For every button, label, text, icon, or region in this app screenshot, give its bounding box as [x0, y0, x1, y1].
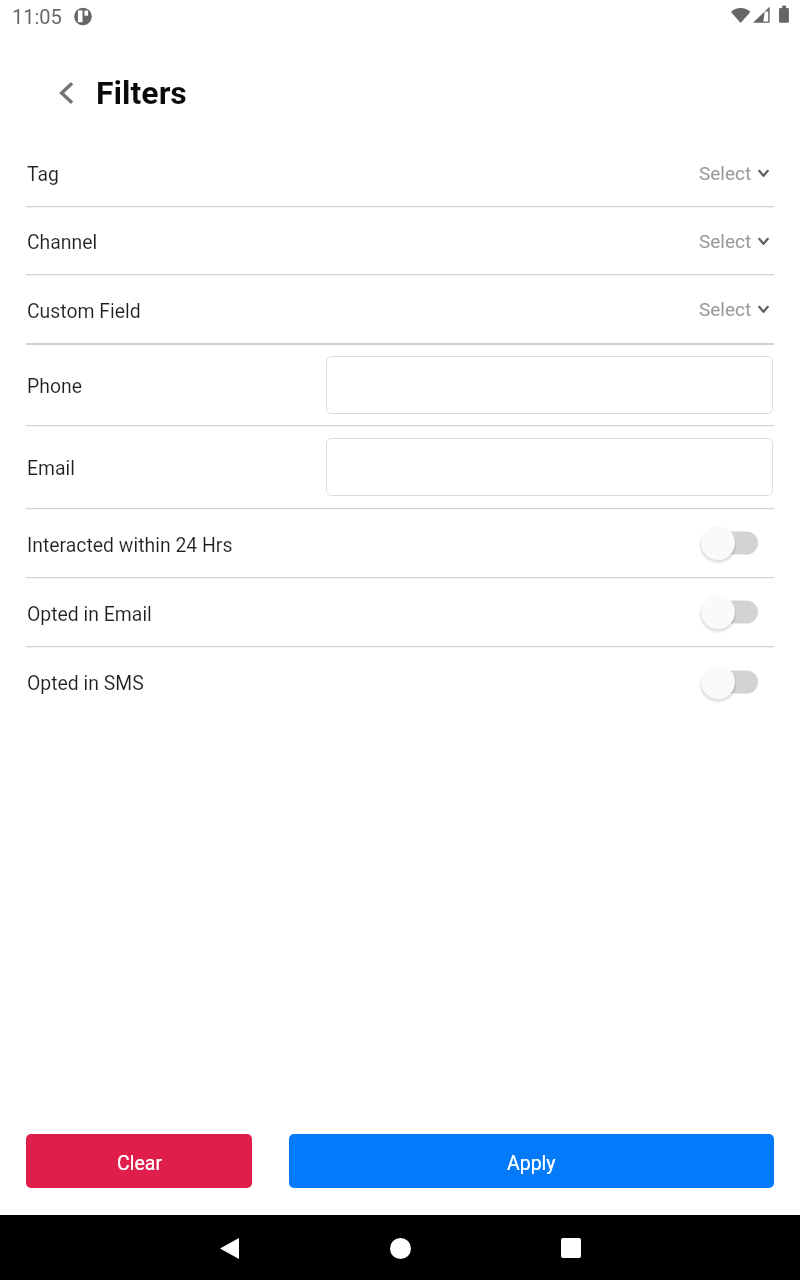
button[interactable]: Channel: [0, 207, 800, 274]
button[interactable]: Opted in Email: [0, 578, 800, 646]
staticText: Opted in Email: [27, 603, 152, 626]
staticText: Phone: [27, 375, 82, 398]
button[interactable]: Opted in SMS: [0, 647, 800, 716]
staticText: Clear: [117, 1152, 162, 1175]
button[interactable]: Interacted within 24 Hrs: [0, 509, 800, 577]
button[interactable]: Custom Field: [0, 275, 800, 343]
button[interactable]: Tag: [0, 139, 800, 206]
staticText: Opted in SMS: [27, 672, 144, 695]
button[interactable]: [326, 438, 773, 496]
button[interactable]: [326, 356, 773, 414]
staticText: 11:05: [12, 5, 62, 28]
button[interactable]: Back: [199, 1218, 259, 1278]
staticText: Email: [27, 457, 76, 480]
staticText: Custom Field: [27, 300, 141, 323]
button[interactable]: Home: [370, 1218, 430, 1278]
staticText: Tag: [27, 163, 59, 186]
staticText: Select: [699, 162, 752, 184]
staticText: Interacted within 24 Hrs: [27, 534, 233, 557]
staticText: Select: [699, 298, 752, 320]
button[interactable]: Clear: [26, 1134, 252, 1188]
staticText: Channel: [27, 231, 98, 254]
staticText: Apply: [507, 1152, 556, 1175]
staticText: Select: [699, 230, 752, 252]
button[interactable]: Recent apps: [541, 1218, 601, 1278]
button[interactable]: Back: [49, 75, 85, 111]
staticText: Filters: [96, 74, 187, 112]
button[interactable]: Apply: [289, 1134, 774, 1188]
